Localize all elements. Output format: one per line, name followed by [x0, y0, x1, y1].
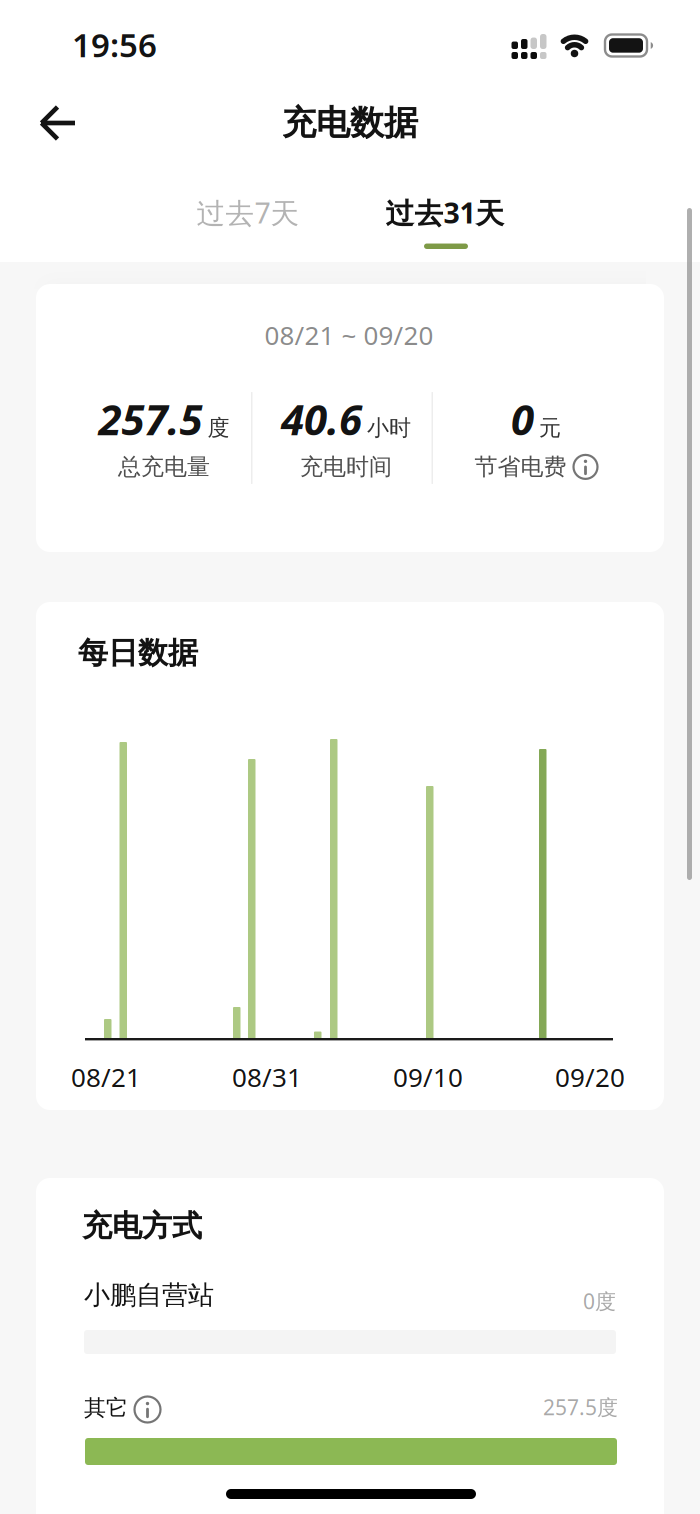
button[interactable]: Back — [30, 95, 86, 151]
staticText: 08/21 ~ 09/20 — [264, 318, 433, 352]
staticText: 257.5 — [98, 391, 202, 447]
staticText: 过去31天 — [385, 194, 504, 231]
staticText: 过去7天 — [196, 194, 299, 231]
staticText: 每日数据 — [78, 635, 198, 671]
staticText: 257.5度 — [543, 1393, 618, 1421]
staticText: 19:56 — [72, 23, 157, 66]
staticText: 08/31 — [232, 1060, 302, 1094]
button[interactable]: 过去31天 — [385, 194, 504, 231]
staticText: 度 — [207, 414, 229, 441]
staticText: 节省电费 — [474, 453, 566, 481]
staticText: 09/10 — [393, 1060, 463, 1094]
staticText: 元 — [539, 414, 561, 441]
staticText: 充电数据 — [282, 102, 418, 144]
staticText: 充电时间 — [300, 453, 392, 481]
staticText: 40.6 — [281, 391, 362, 447]
staticText: 小时 — [367, 414, 411, 441]
staticText: 0度 — [583, 1287, 616, 1315]
staticText: 其它 — [84, 1394, 128, 1421]
staticText: 09/20 — [555, 1060, 625, 1094]
button[interactable]: 节省电费说明 — [474, 453, 597, 481]
button[interactable]: 其它说明 — [134, 1396, 160, 1422]
staticText: 08/21 — [71, 1060, 141, 1094]
staticText: 总充电量 — [118, 453, 210, 481]
staticText: 小鹏自营站 — [84, 1279, 214, 1311]
button[interactable]: 过去7天 — [196, 194, 299, 231]
staticText: 0 — [511, 391, 534, 447]
staticText: 充电方式 — [82, 1208, 202, 1244]
